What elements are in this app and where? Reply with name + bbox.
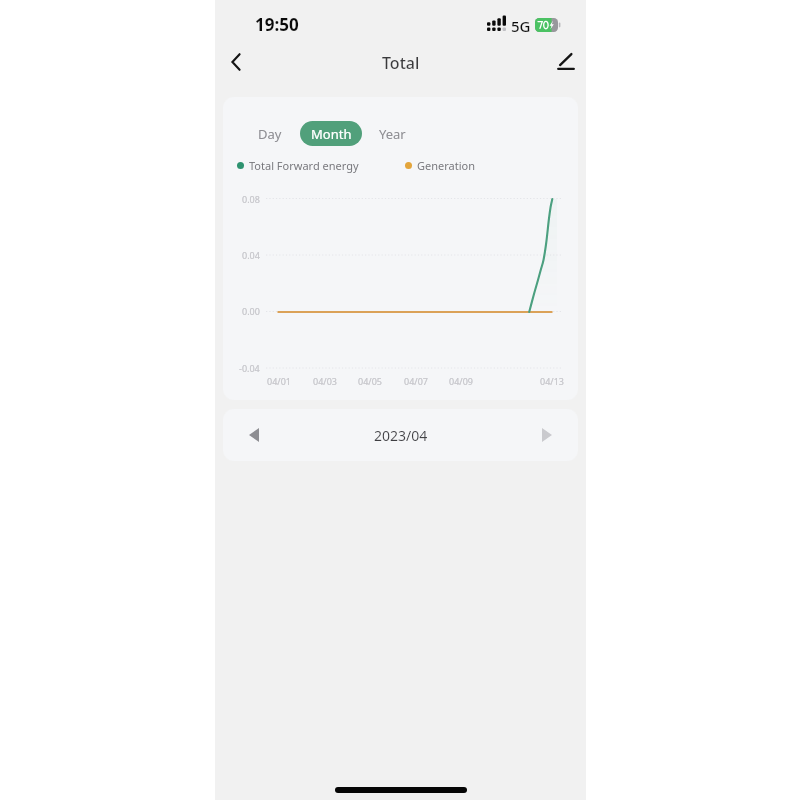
button[interactable]: Generation: [405, 156, 475, 175]
staticText: 04/01: [267, 375, 291, 387]
staticText: Day: [258, 125, 282, 143]
staticText: Total: [382, 52, 420, 74]
button[interactable]: Previous month: [237, 418, 271, 452]
staticText: Month: [311, 125, 352, 143]
staticText: 04/03: [313, 375, 337, 387]
staticText: 04/07: [404, 375, 428, 387]
button[interactable]: Next month: [530, 418, 564, 452]
staticText: 0.00: [242, 305, 260, 317]
staticText: 04/13: [540, 375, 564, 387]
staticText: Year: [379, 125, 406, 143]
button[interactable]: Total Forward energy: [237, 156, 359, 175]
staticText: 5G: [511, 16, 531, 36]
staticText: 2023/04: [374, 426, 428, 445]
staticText: -0.04: [239, 362, 260, 374]
staticText: 04/09: [449, 375, 473, 387]
button[interactable]: Month: [300, 121, 362, 146]
staticText: 0.04: [242, 249, 260, 261]
staticText: Generation: [417, 158, 475, 173]
staticText: 04/05: [358, 375, 382, 387]
button[interactable]: Back: [218, 44, 254, 80]
button[interactable]: Year: [369, 121, 416, 146]
button[interactable]: Edit: [548, 44, 584, 80]
staticText: 0.08: [242, 193, 260, 205]
staticText: 19:50: [255, 13, 299, 36]
staticText: Total Forward energy: [249, 158, 359, 173]
button[interactable]: Day: [248, 121, 292, 146]
